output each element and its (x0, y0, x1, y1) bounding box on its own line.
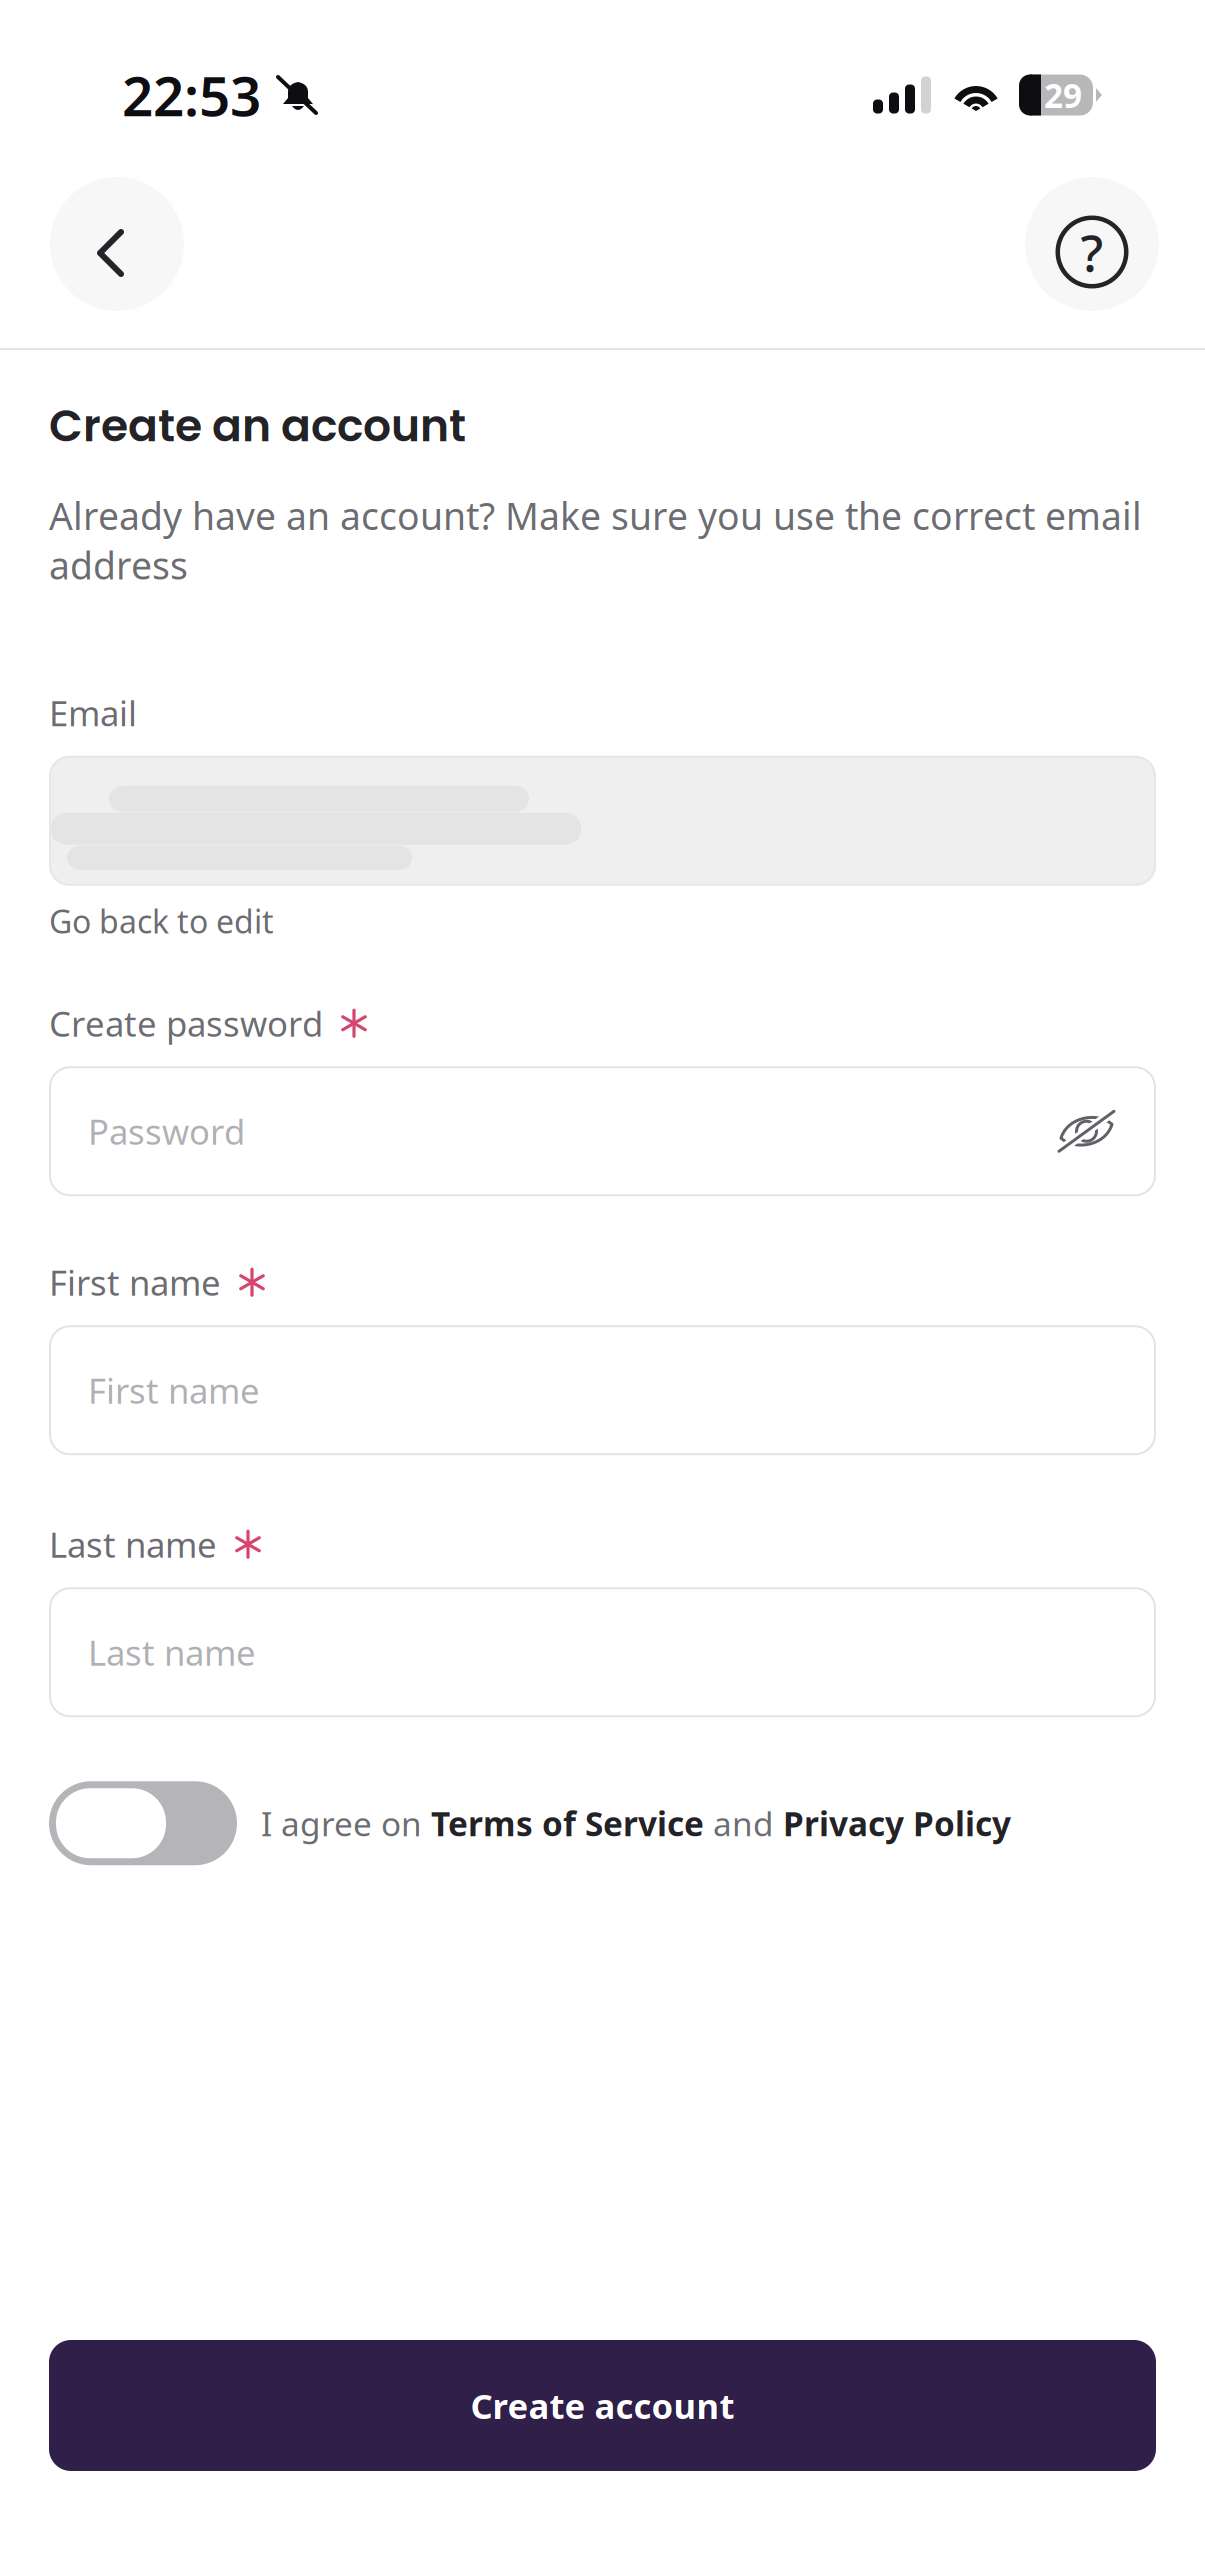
staticText: Last name (49, 1521, 217, 1567)
staticText: Create account (470, 2382, 734, 2428)
staticText: Last name (88, 1629, 256, 1675)
staticText: ? (1080, 218, 1103, 286)
staticText: 22:53 (122, 59, 261, 131)
staticText: and (704, 1801, 783, 1845)
staticText: Password (88, 1108, 245, 1154)
staticText: Privacy Policy (783, 1801, 1011, 1845)
staticText: First name (49, 1259, 221, 1305)
staticText: Create an account (49, 395, 466, 457)
button[interactable]: Back (50, 177, 184, 311)
staticText: Email (49, 690, 137, 736)
staticText: 29 (1044, 73, 1082, 117)
button[interactable]: Create account (49, 2340, 1156, 2471)
staticText: Already have an account? Make sure you u… (49, 491, 1142, 590)
button[interactable]: Help (1025, 177, 1159, 311)
staticText: Create password (49, 1000, 323, 1046)
button[interactable]: I agree on (49, 1781, 1156, 1865)
staticText: I agree on (261, 1801, 431, 1845)
staticText: Go back to edit (49, 900, 274, 942)
staticText: First name (88, 1367, 260, 1413)
staticText: Terms of Service (431, 1801, 704, 1845)
